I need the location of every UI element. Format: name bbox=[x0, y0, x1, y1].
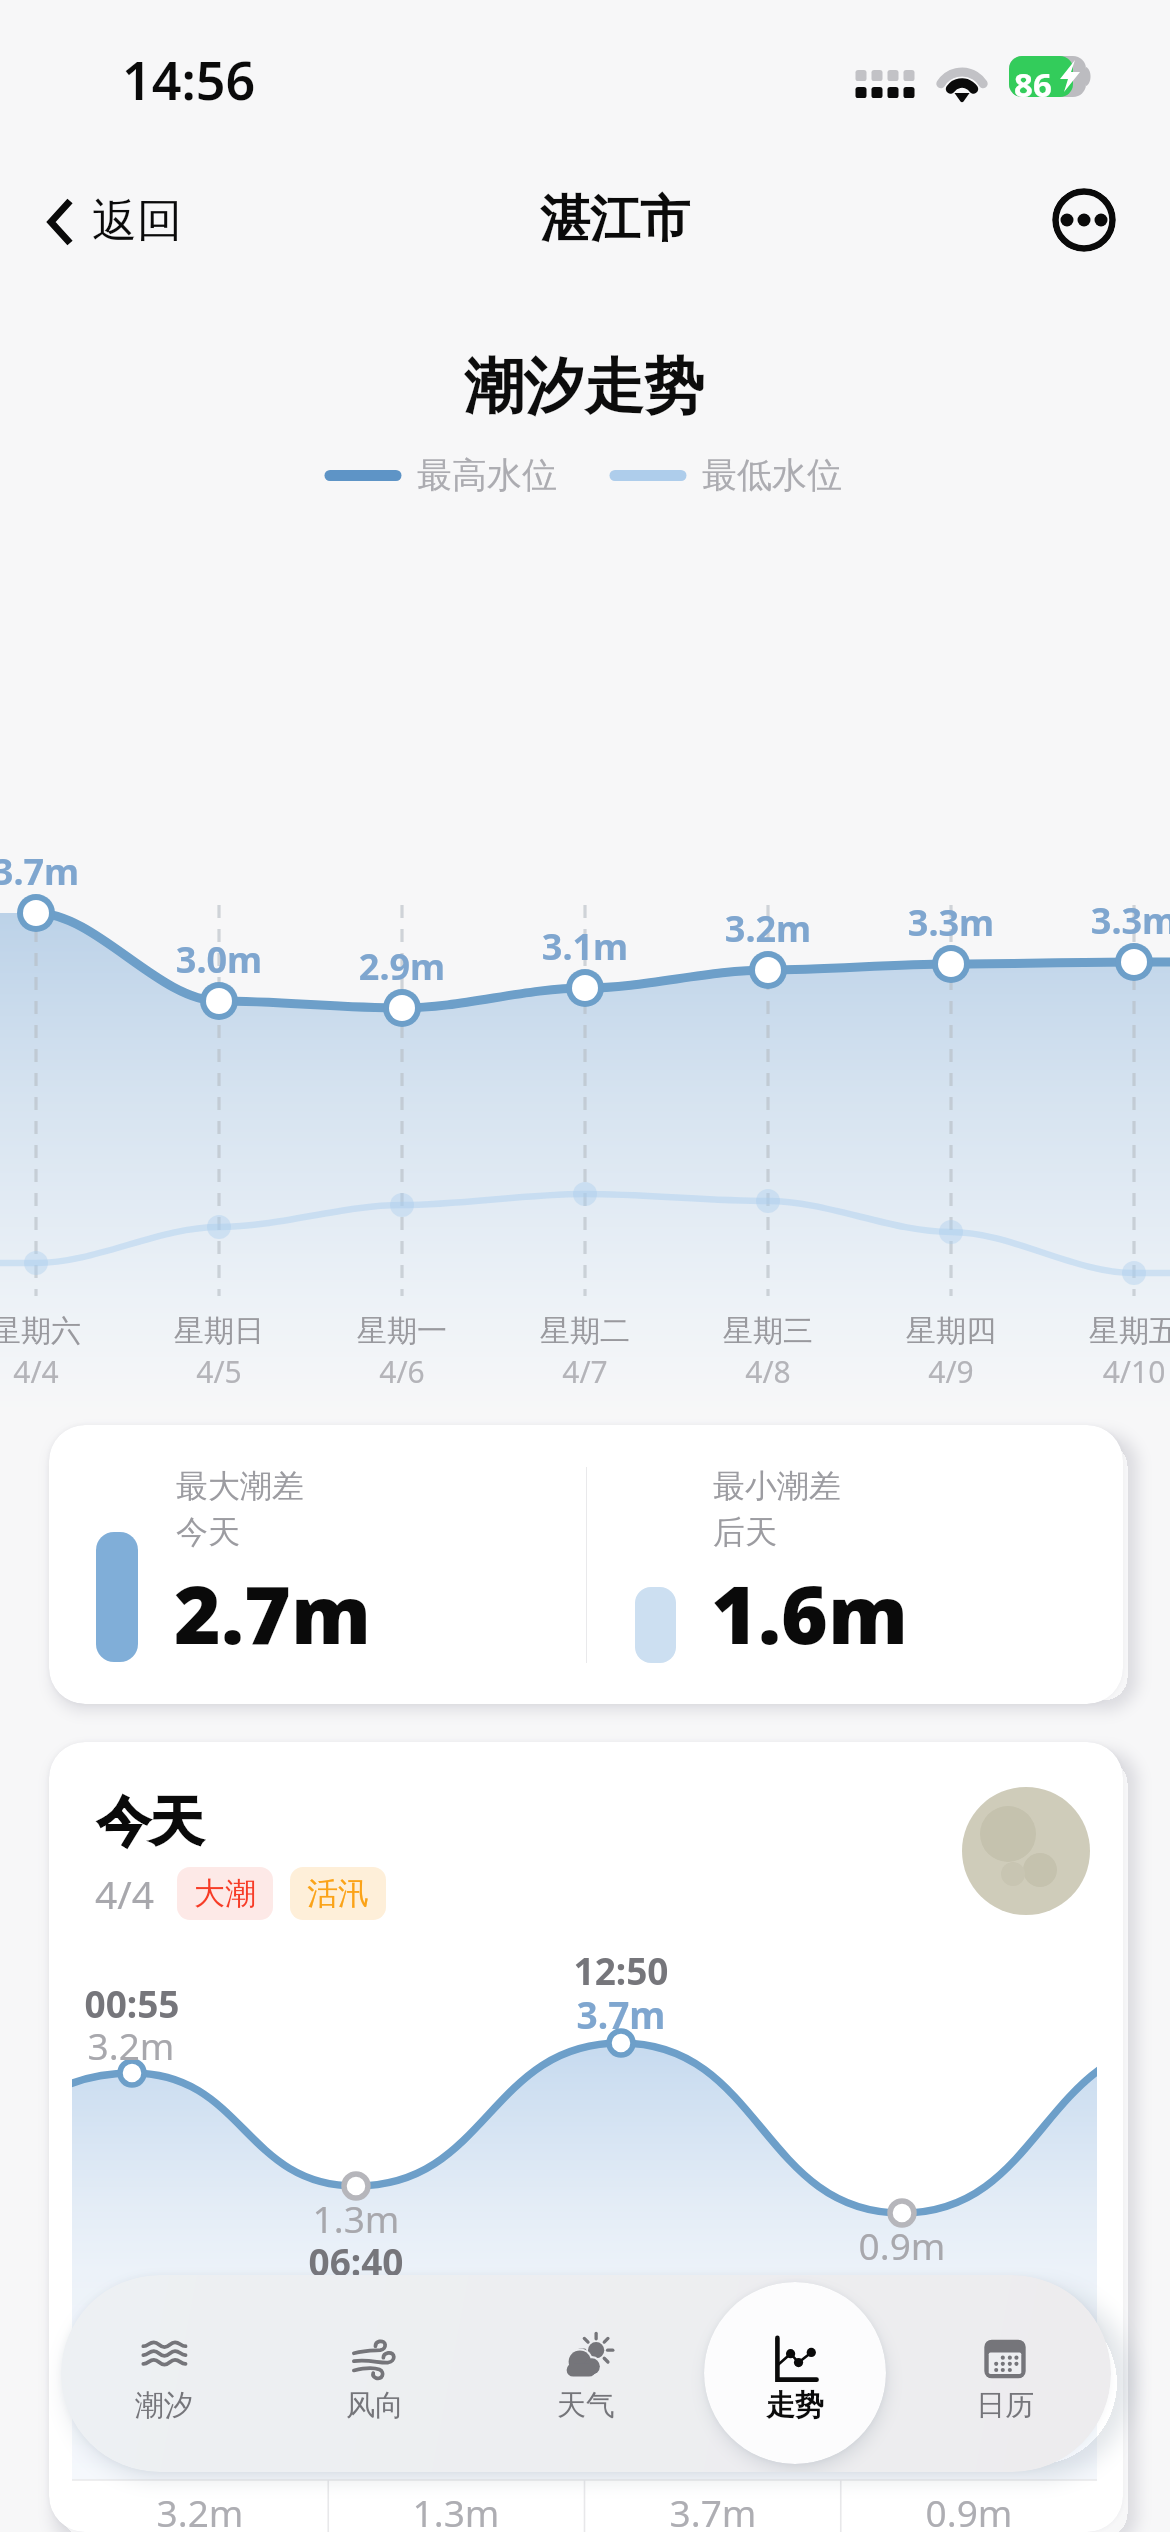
staticText: 湛江市 bbox=[415, 188, 815, 251]
staticText: 12:50 bbox=[511, 1945, 731, 1995]
staticText: 2.7m bbox=[174, 1558, 371, 1667]
staticText: 3.7m bbox=[0, 847, 136, 896]
staticText: 1.6m bbox=[711, 1558, 908, 1667]
staticText: 2.9m bbox=[302, 942, 502, 991]
staticText: 1.3m bbox=[246, 2193, 466, 2243]
staticText: 天气 bbox=[491, 2387, 681, 2424]
staticText: 潮汐走势 bbox=[334, 349, 834, 425]
staticText: 活汛 bbox=[307, 1874, 369, 1913]
button[interactable]: 日历 bbox=[910, 2275, 1100, 2472]
staticText: 星期五 bbox=[1034, 1312, 1170, 1350]
staticText: 3.3m bbox=[1034, 896, 1170, 945]
staticText: 潮汐 bbox=[69, 2387, 259, 2424]
staticText: 1.3m bbox=[346, 2487, 566, 2532]
staticText: 3.2m bbox=[49, 2020, 241, 2070]
staticText: 3.2m bbox=[90, 2487, 310, 2532]
button[interactable]: 走势 bbox=[700, 2275, 890, 2472]
staticText: 星期二 bbox=[485, 1312, 685, 1350]
staticText: 最小潮差 bbox=[713, 1466, 841, 1506]
button[interactable]: 最大潮差 bbox=[49, 1425, 1123, 1704]
staticText: 今天 bbox=[176, 1512, 240, 1552]
staticText: 大潮 bbox=[194, 1874, 256, 1913]
staticText: 00:55 bbox=[49, 1978, 242, 2028]
staticText: 86 bbox=[1014, 62, 1052, 107]
staticText: 星期四 bbox=[851, 1312, 1051, 1350]
staticText: 星期三 bbox=[668, 1312, 868, 1350]
button[interactable]: 风向 bbox=[280, 2275, 470, 2472]
staticText: 4/9 bbox=[851, 1351, 1051, 1392]
staticText: 4/7 bbox=[485, 1351, 685, 1392]
staticText: 0.9m bbox=[792, 2220, 1012, 2270]
staticText: 3.3m bbox=[851, 898, 1051, 947]
button[interactable]: 天气 bbox=[491, 2275, 681, 2472]
staticText: 风向 bbox=[280, 2387, 470, 2424]
staticText: 18:25 bbox=[792, 2263, 1012, 2313]
staticText: 3.0m bbox=[119, 935, 319, 984]
staticText: 星期六 bbox=[0, 1312, 136, 1350]
staticText: 4/6 bbox=[302, 1351, 502, 1392]
button[interactable]: 潮汐 bbox=[69, 2275, 259, 2472]
staticText: 4/10 bbox=[1034, 1351, 1170, 1392]
staticText: 4/8 bbox=[668, 1351, 868, 1392]
staticText: 14:56 bbox=[122, 44, 256, 115]
button[interactable]: 今天 bbox=[49, 1742, 1123, 2532]
staticText: 最低水位 bbox=[702, 453, 842, 497]
button[interactable]: More options bbox=[1052, 188, 1116, 252]
staticText: 4/5 bbox=[119, 1351, 319, 1392]
staticText: 最大潮差 bbox=[176, 1466, 304, 1506]
staticText: 3.2m bbox=[668, 904, 868, 953]
staticText: 星期一 bbox=[302, 1312, 502, 1350]
staticText: 今天 bbox=[97, 1789, 203, 1856]
staticText: 返回 bbox=[92, 193, 182, 250]
staticText: 后天 bbox=[713, 1512, 777, 1552]
staticText: 3.7m bbox=[603, 2487, 823, 2532]
staticText: 走势 bbox=[700, 2387, 890, 2424]
staticText: 星期日 bbox=[119, 1312, 319, 1350]
staticText: 最高水位 bbox=[417, 453, 557, 497]
staticText: 4/4 bbox=[95, 1867, 155, 1920]
staticText: 06:40 bbox=[246, 2236, 466, 2286]
staticText: 日历 bbox=[910, 2387, 1100, 2424]
staticText: 3.1m bbox=[485, 922, 685, 971]
staticText: 4/4 bbox=[0, 1351, 136, 1392]
staticText: 0.9m bbox=[859, 2487, 1079, 2532]
staticText: 3.7m bbox=[511, 1989, 731, 2039]
button[interactable]: 返回 bbox=[36, 185, 192, 258]
